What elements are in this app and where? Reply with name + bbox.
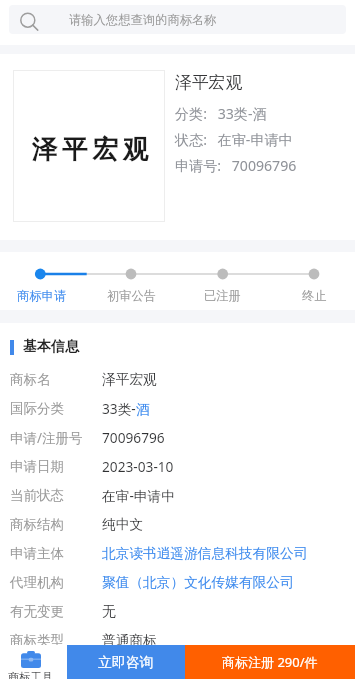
staticText: 国际分类 (10, 400, 102, 417)
staticText: 请输入您想查询的商标名称 (69, 12, 217, 27)
staticText: 当前状态 (10, 487, 102, 504)
staticText: 申请/注册号 (10, 429, 102, 447)
button[interactable]: 商标名 (0, 365, 355, 394)
staticText: 申请日期 (10, 458, 102, 475)
staticText: 泽平宏观 (102, 371, 157, 388)
staticText: 无 (102, 603, 116, 620)
staticText: 申请主体 (10, 545, 102, 562)
staticText: 已注册 (204, 288, 241, 303)
button[interactable]: 代理机构 (0, 568, 355, 597)
button[interactable]: 立即咨询 (67, 645, 185, 679)
other: 商标工具 (21, 651, 41, 668)
staticText: 聚值（北京）文化传媒有限公司 (102, 574, 294, 591)
button[interactable]: 初审公告 (95, 284, 169, 306)
button[interactable]: 国际分类 (0, 394, 355, 423)
button[interactable]: 有无变更 (0, 597, 355, 626)
staticText: 商标名 (10, 371, 102, 388)
staticText: 普通商标 (102, 632, 157, 649)
staticText: 在审-申请中 (102, 486, 175, 505)
staticText: 泽平宏观 (175, 72, 243, 93)
staticText: 商标注册 290/件 (222, 653, 318, 671)
staticText: 70096796 (102, 428, 165, 447)
button[interactable]: 申请日期 (0, 452, 355, 481)
staticText: 商标工具 (8, 670, 53, 679)
button[interactable]: 商标工具 (0, 645, 67, 679)
button[interactable]: 已注册 (185, 284, 259, 306)
staticText: 商标申请 (17, 288, 67, 303)
staticText: 33类-酒 (102, 399, 150, 418)
staticText: 商标类型 (10, 632, 102, 649)
staticText: 有无变更 (10, 603, 102, 620)
staticText: 终止 (302, 288, 327, 303)
button[interactable]: 商标类型 (0, 626, 355, 655)
staticText: 商标结构 (10, 516, 102, 533)
button[interactable]: 申请主体 (0, 539, 355, 568)
staticText: 立即咨询 (98, 654, 154, 671)
staticText: 纯中文 (102, 516, 144, 533)
staticText: 申请号: 70096796 (175, 156, 297, 175)
button[interactable]: 终止 (277, 284, 351, 306)
staticText: 基本信息 (23, 338, 79, 356)
staticText: 代理机构 (10, 574, 102, 591)
button[interactable]: 商标申请 (5, 284, 79, 306)
staticText: 北京读书逍遥游信息科技有限公司 (102, 545, 308, 562)
staticText: 初审公告 (107, 288, 157, 303)
button[interactable]: 商标注册 290/件 (185, 645, 355, 679)
staticText: 2023-03-10 (102, 457, 174, 476)
button[interactable]: 请输入您想查询的商标名称 (9, 5, 346, 34)
button[interactable]: 商标结构 (0, 510, 355, 539)
staticText: 状态: 在审-申请中 (175, 130, 293, 149)
button[interactable]: 申请/注册号 (0, 423, 355, 452)
staticText: 泽平宏观 (29, 133, 151, 165)
staticText: 分类: 33类-酒 (175, 104, 267, 123)
button[interactable]: 当前状态 (0, 481, 355, 510)
